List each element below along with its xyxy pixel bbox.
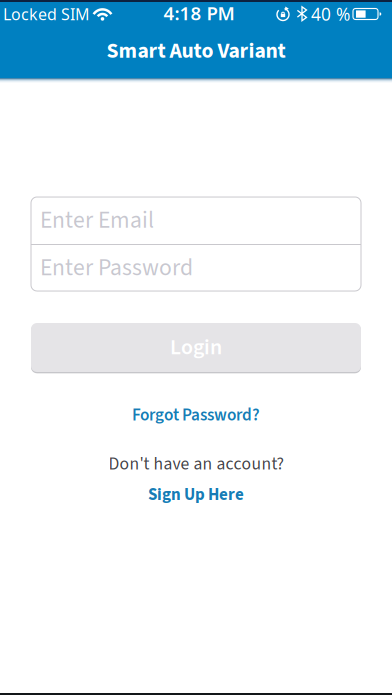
staticText: Login [170,332,222,363]
staticText: Smart Auto Variant [106,36,285,66]
staticText: 4:18 PM [163,1,234,25]
staticText: 40 % [311,2,350,25]
button[interactable]: Enter Email [31,197,361,244]
button[interactable]: Sign Up Here [148,483,244,507]
button[interactable]: Enter Password [31,245,361,291]
staticText: Forgot Password? [132,403,260,427]
staticText: Sign Up Here [148,483,244,507]
button[interactable]: Login [31,323,361,372]
staticText: Locked SIM [3,3,90,25]
staticText: Don't have an account? [108,451,283,477]
staticText: Enter Password [40,251,193,285]
button[interactable]: Forgot Password? [132,403,260,427]
staticText: Enter Email [40,204,154,237]
